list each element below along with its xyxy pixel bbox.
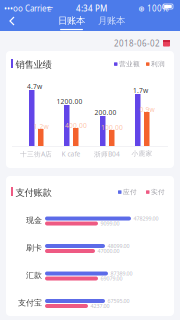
button[interactable]: 日账本 xyxy=(56,15,87,30)
staticText: 1200.00 xyxy=(56,97,82,106)
staticText: 4:34 PM xyxy=(76,3,107,14)
staticText: 100.00 xyxy=(101,123,123,132)
staticText: 浙师B04 xyxy=(94,149,120,158)
staticText: 现金 xyxy=(26,215,42,225)
staticText: 4.7w xyxy=(27,82,42,91)
staticText: 1.2w xyxy=(33,122,48,131)
staticText: 销售业绩 xyxy=(15,59,51,70)
staticText: 刷卡 xyxy=(26,243,42,253)
staticText: ⊕ 100% xyxy=(138,3,169,14)
staticText: 0.9w xyxy=(139,105,154,114)
staticText: ᯤ xyxy=(46,3,53,14)
staticText: 实付 xyxy=(151,188,165,196)
staticText: 汇款 xyxy=(26,270,42,280)
button[interactable]: Back xyxy=(4,13,22,29)
staticText: 利润 xyxy=(151,60,165,68)
button[interactable]: 月账本 xyxy=(96,15,127,30)
staticText: 478299.00 xyxy=(133,215,158,222)
staticText: K cafe xyxy=(61,149,80,158)
staticText: 支付账款 xyxy=(15,187,51,198)
staticText: 67595.00 xyxy=(107,297,129,304)
staticText: 2018-06-02 xyxy=(114,38,160,49)
staticText: •••oo Carrier xyxy=(4,3,50,14)
staticText: 9099.00 xyxy=(100,220,119,227)
staticText: 十三街A店 xyxy=(20,149,52,158)
staticText: 营业额 xyxy=(119,60,140,68)
staticText: 4237.00 xyxy=(90,302,109,309)
staticText: 69079.00 xyxy=(100,275,122,282)
staticText: 小鹿家 xyxy=(131,149,152,158)
staticText: 1.7w xyxy=(133,86,148,95)
staticText: 400.00 xyxy=(65,121,87,130)
button[interactable]: 2018-06-02 xyxy=(114,38,170,49)
staticText: 日账本 xyxy=(58,15,85,26)
staticText: 200.00 xyxy=(94,108,116,117)
staticText: 支付宝 xyxy=(18,298,42,308)
staticText: 87389.00 xyxy=(110,270,132,277)
staticText: 应付 xyxy=(123,188,137,196)
staticText: 48099.00 xyxy=(107,242,129,249)
staticText: 47000.00 xyxy=(97,247,119,254)
staticText: 月账本 xyxy=(98,15,125,26)
